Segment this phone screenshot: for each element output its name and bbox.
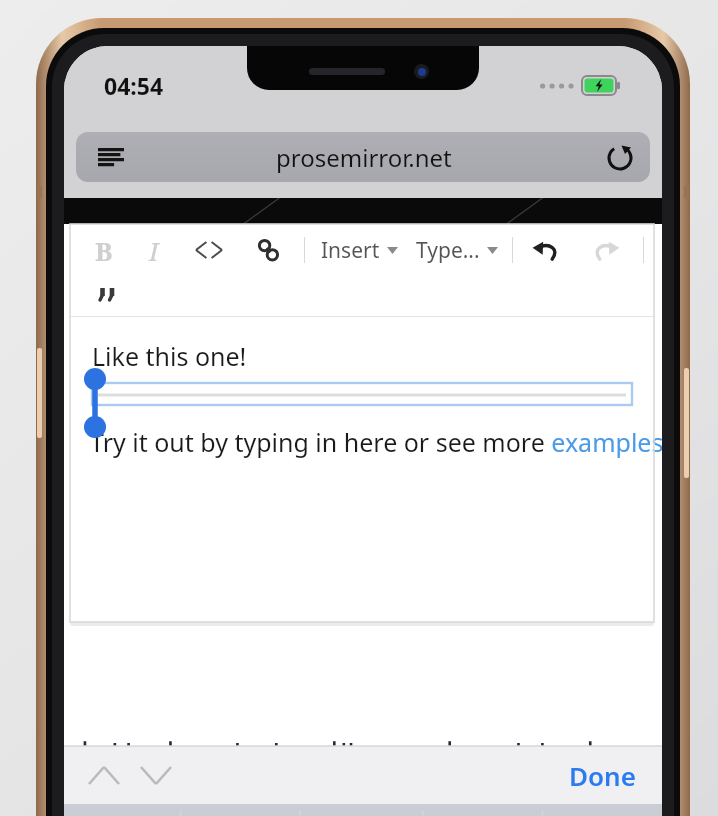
button[interactable]: Undo xyxy=(529,233,563,267)
staticText: prosemirror.net xyxy=(276,141,452,174)
button[interactable]: Done xyxy=(561,752,644,799)
button[interactable]: Insert xyxy=(321,230,398,270)
button[interactable]: Reload xyxy=(600,137,640,177)
staticText: Type... xyxy=(416,236,480,265)
button[interactable]: Code xyxy=(192,233,226,267)
staticText: B xyxy=(95,233,113,268)
button[interactable]: Link xyxy=(252,233,286,267)
button[interactable]: Previous field xyxy=(78,749,130,801)
button[interactable] xyxy=(92,383,632,405)
staticText: I xyxy=(149,233,159,268)
button[interactable]: Next field xyxy=(130,749,182,801)
button[interactable]: Type... xyxy=(416,230,498,270)
staticText: Done xyxy=(569,758,636,793)
button[interactable]: Try it out by typing in here or see more… xyxy=(90,425,662,459)
button[interactable]: B xyxy=(92,230,116,270)
staticText: Insert xyxy=(321,236,380,265)
button[interactable]: Blockquote xyxy=(92,279,126,313)
button[interactable]: Reader view xyxy=(94,140,128,174)
button[interactable]: Redo xyxy=(589,233,623,267)
button[interactable]: I xyxy=(142,230,166,270)
button[interactable]: Reader view xyxy=(76,132,650,182)
staticText: Like this one! xyxy=(92,339,247,373)
staticText: 04:54 xyxy=(104,70,164,101)
